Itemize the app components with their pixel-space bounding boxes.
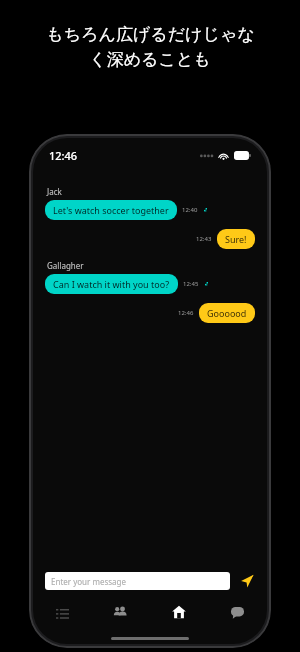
staticText: 12:43 xyxy=(196,235,212,243)
button[interactable]: Let's watch soccer together xyxy=(45,200,177,220)
staticText: 12:45 xyxy=(183,280,199,288)
staticText: Enter your message xyxy=(51,576,126,587)
button[interactable]: Friends xyxy=(91,599,149,625)
button[interactable]: Home xyxy=(149,599,208,625)
staticText: 12:46 xyxy=(178,309,194,317)
button[interactable]: Sure! xyxy=(217,229,255,249)
staticText: 12:40 xyxy=(182,206,198,214)
staticText: もちろん広げるだけじゃな xyxy=(46,24,255,45)
staticText: Let's watch soccer together xyxy=(53,204,169,216)
staticText: Gallagher xyxy=(47,260,84,271)
staticText: 12:46 xyxy=(49,148,78,163)
staticText: Goooood xyxy=(207,307,247,319)
button[interactable]: Lists xyxy=(33,599,91,625)
button[interactable]: Goooood xyxy=(199,303,255,323)
staticText: く深めることも xyxy=(89,49,211,70)
button[interactable]: Send xyxy=(237,571,257,591)
button[interactable]: Enter your message xyxy=(45,572,230,590)
staticText: Can I watch it with you too? xyxy=(53,278,170,290)
staticText: Jack xyxy=(47,186,62,197)
staticText: Sure! xyxy=(225,233,247,245)
button[interactable]: Chat xyxy=(208,599,267,625)
button[interactable]: Can I watch it with you too? xyxy=(45,274,178,294)
